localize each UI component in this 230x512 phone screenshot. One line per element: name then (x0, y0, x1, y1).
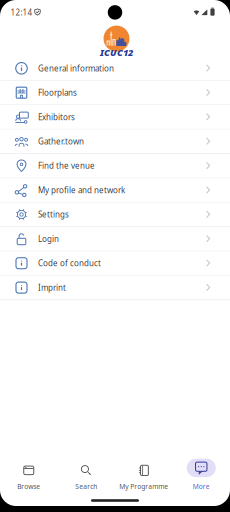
button[interactable]: Browse (0, 457, 57, 493)
staticText: Login (38, 234, 59, 244)
staticText: Exhibitors (38, 112, 75, 122)
staticText: Search (75, 482, 97, 491)
button[interactable]: My Programme (115, 457, 172, 493)
button[interactable]: Find the venue (0, 154, 230, 178)
button[interactable]: Code of conduct (0, 251, 230, 276)
button[interactable]: More (172, 457, 230, 493)
staticText: Browse (17, 482, 40, 491)
staticText: General information (38, 63, 114, 74)
button[interactable]: My profile and network (0, 178, 230, 203)
staticText: Floorplans (38, 87, 77, 98)
button[interactable]: Login (0, 227, 230, 251)
staticText: ICUC12 (100, 46, 133, 59)
staticText: My Programme (119, 482, 168, 491)
staticText: More (193, 482, 210, 491)
staticText: Gather.town (38, 136, 84, 147)
button[interactable]: General information (0, 56, 230, 81)
button[interactable]: Gather.town (0, 130, 230, 154)
button[interactable]: Search (57, 457, 115, 493)
staticText: Settings (38, 209, 69, 220)
button[interactable]: Imprint (0, 276, 230, 300)
button[interactable]: Exhibitors (0, 105, 230, 130)
staticText: 12:14 (10, 7, 32, 18)
staticText: Code of conduct (38, 258, 101, 268)
staticText: My profile and network (38, 185, 125, 195)
button[interactable]: Floorplans (0, 81, 230, 105)
staticText: Find the venue (38, 160, 95, 171)
button[interactable]: Settings (0, 203, 230, 227)
staticText: Imprint (38, 282, 66, 293)
